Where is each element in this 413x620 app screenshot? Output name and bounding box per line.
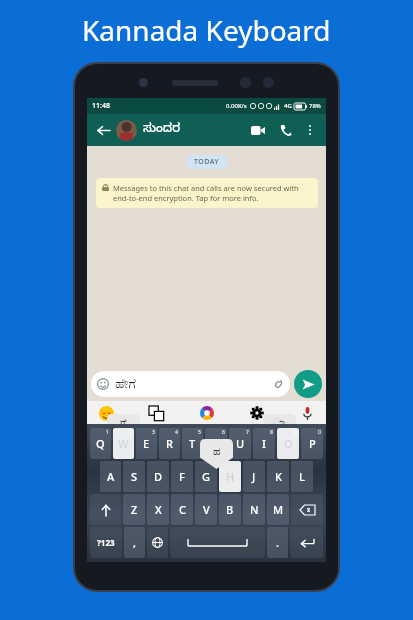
staticText: 1: [106, 429, 109, 436]
button[interactable]: [170, 527, 265, 558]
staticText: ?123: [97, 537, 115, 548]
button[interactable]: Translate: [147, 404, 165, 422]
button[interactable]: M: [267, 494, 289, 525]
button[interactable]: Emoji: [97, 404, 115, 422]
staticText: R: [166, 436, 173, 451]
button[interactable]: A: [100, 461, 121, 492]
staticText: T: [189, 436, 196, 451]
button[interactable]: S: [123, 461, 145, 492]
button[interactable]: X: [147, 494, 169, 525]
button[interactable]: TODAY: [194, 157, 220, 167]
button[interactable]: G: [195, 461, 217, 492]
staticText: G: [202, 469, 210, 484]
staticText: U: [236, 436, 245, 451]
button[interactable]: Settings: [248, 404, 266, 422]
staticText: ಗೆ: [120, 417, 127, 428]
button[interactable]: Send: [294, 370, 322, 398]
staticText: 9: [294, 429, 297, 436]
staticText: 0.00K/s: [226, 102, 247, 110]
button[interactable]: ?123: [90, 527, 122, 558]
staticText: D: [154, 469, 163, 484]
staticText: 11:48: [92, 101, 110, 111]
button[interactable]: L: [291, 461, 313, 492]
button[interactable]: E: [136, 428, 157, 459]
button[interactable]: ಹೇಗೆ: [97, 371, 284, 397]
button[interactable]: .: [267, 527, 288, 558]
other: Shift: [100, 504, 112, 516]
button[interactable]: Voice input: [298, 404, 316, 422]
staticText: K: [275, 469, 282, 484]
button[interactable]: Shift: [90, 494, 121, 525]
staticText: J: [252, 469, 256, 484]
button[interactable]: C: [171, 494, 193, 525]
button[interactable]: Backspace: [291, 494, 323, 525]
button[interactable]: Enter: [290, 527, 323, 558]
staticText: 4: [175, 429, 178, 436]
staticText: C: [179, 502, 186, 517]
staticText: Z: [131, 502, 138, 517]
button[interactable]: N: [243, 494, 265, 525]
staticText: ಾ: [273, 417, 286, 428]
button[interactable]: K: [267, 461, 289, 492]
button[interactable]: Y: [205, 428, 227, 459]
staticText: Messages to this chat and calls are now …: [113, 183, 312, 203]
button[interactable]: W: [113, 428, 134, 459]
other: Backspace: [300, 505, 315, 515]
button[interactable]: B: [219, 494, 241, 525]
staticText: H: [226, 469, 235, 484]
button[interactable]: H: [219, 461, 241, 492]
other: Change language: [152, 537, 163, 548]
staticText: 3: [152, 429, 155, 436]
staticText: ಸುಂದರ: [143, 122, 181, 138]
button[interactable]: Messages to this chat and calls are now …: [102, 183, 312, 203]
button[interactable]: Q: [90, 428, 111, 459]
staticText: 0: [318, 429, 321, 436]
staticText: M: [273, 502, 284, 517]
other: Enter: [299, 537, 314, 548]
button[interactable]: U: [229, 428, 251, 459]
button[interactable]: P: [301, 428, 323, 459]
staticText: F: [179, 469, 185, 484]
staticText: P: [309, 436, 316, 451]
staticText: Kannada Keyboard: [82, 11, 331, 49]
button[interactable]: Z: [123, 494, 145, 525]
button[interactable]: Profile photo: [116, 120, 137, 141]
staticText: N: [250, 502, 259, 517]
button[interactable]: D: [147, 461, 169, 492]
button[interactable]: V: [195, 494, 217, 525]
staticText: 78%: [309, 102, 321, 110]
staticText: A: [107, 469, 115, 484]
staticText: W: [118, 436, 129, 451]
staticText: L: [299, 469, 305, 484]
button[interactable]: J: [243, 461, 265, 492]
staticText: 4G: [284, 102, 292, 110]
button[interactable]: O: [277, 428, 299, 459]
staticText: O: [284, 436, 293, 451]
staticText: TODAY: [194, 157, 220, 167]
staticText: ,: [133, 535, 137, 550]
other: Attach: [272, 378, 284, 390]
button[interactable]: I: [253, 428, 275, 459]
staticText: ಹ: [213, 446, 221, 457]
button[interactable]: Themes: [198, 404, 216, 422]
staticText: I: [262, 436, 266, 451]
staticText: B: [226, 502, 234, 517]
staticText: Y: [213, 436, 220, 451]
button[interactable]: Back: [93, 120, 113, 140]
staticText: Q: [96, 436, 105, 451]
button[interactable]: More options: [300, 120, 320, 140]
staticText: 2: [129, 429, 132, 436]
staticText: 7: [246, 429, 249, 436]
staticText: E: [143, 436, 150, 451]
button[interactable]: Change language: [147, 527, 168, 558]
button[interactable]: Voice call: [274, 118, 298, 142]
button[interactable]: ,: [124, 527, 145, 558]
button[interactable]: R: [159, 428, 180, 459]
staticText: ಹೇಗೆ: [115, 378, 136, 391]
staticText: V: [203, 502, 210, 517]
button[interactable]: F: [171, 461, 193, 492]
button[interactable]: Video call: [246, 118, 270, 142]
staticText: S: [131, 469, 138, 484]
button[interactable]: T: [182, 428, 203, 459]
staticText: 6: [222, 429, 225, 436]
